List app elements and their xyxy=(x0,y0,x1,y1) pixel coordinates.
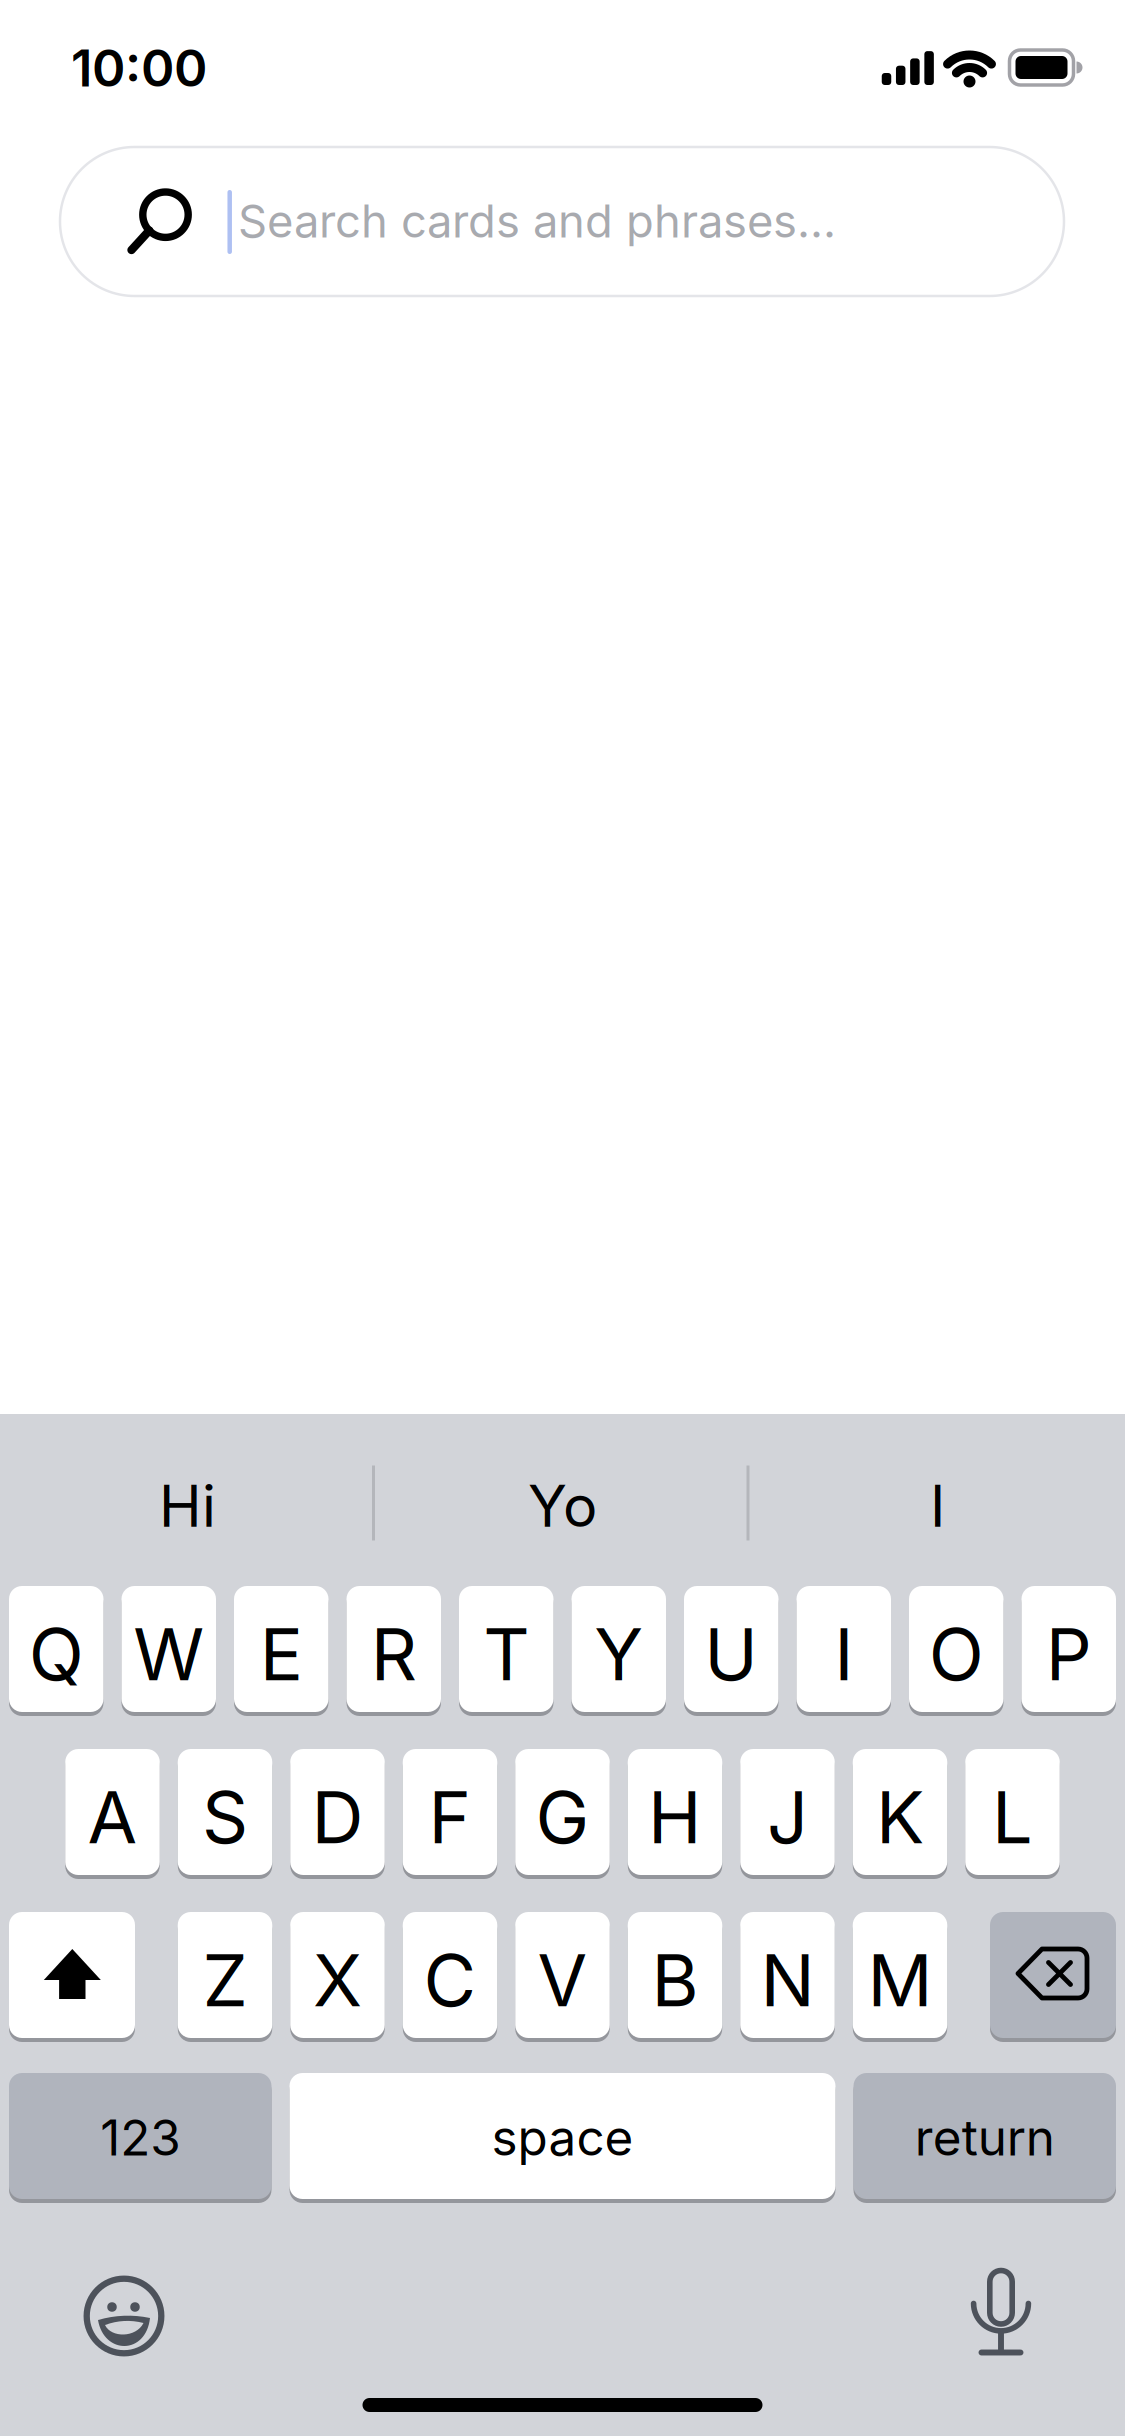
button[interactable]: K xyxy=(853,1749,947,1875)
staticText: E xyxy=(260,1611,303,1696)
button[interactable]: space xyxy=(289,2073,835,2199)
button[interactable]: Yo xyxy=(382,1436,742,1576)
staticText: M xyxy=(867,1937,932,2022)
button[interactable]: D xyxy=(290,1749,385,1875)
button[interactable]: Shift xyxy=(9,1912,135,2038)
staticText: return xyxy=(915,2108,1055,2167)
button[interactable]: O xyxy=(909,1586,1003,1712)
staticText: B xyxy=(651,1937,698,2022)
button[interactable]: L xyxy=(965,1749,1060,1875)
staticText: Y xyxy=(594,1611,643,1696)
staticText: U xyxy=(704,1611,758,1696)
button[interactable]: B xyxy=(628,1912,722,2038)
staticText: O xyxy=(929,1611,984,1696)
button[interactable]: T xyxy=(459,1586,553,1712)
button[interactable]: Dictate xyxy=(931,2235,1071,2375)
staticText: I xyxy=(834,1611,853,1696)
staticText: Q xyxy=(29,1611,84,1696)
button[interactable]: C xyxy=(403,1912,497,2038)
staticText: 10:00 xyxy=(71,38,207,98)
button[interactable]: S xyxy=(178,1749,272,1875)
button[interactable]: return xyxy=(853,2073,1116,2199)
button[interactable]: Q xyxy=(9,1586,103,1712)
button[interactable]: A xyxy=(65,1749,160,1875)
staticText: D xyxy=(311,1774,363,1859)
staticText: 123 xyxy=(100,2108,180,2167)
button[interactable]: N xyxy=(740,1912,835,2038)
button[interactable]: 123 xyxy=(9,2073,271,2199)
button[interactable]: R xyxy=(346,1586,441,1712)
staticText: T xyxy=(483,1611,529,1696)
button[interactable]: Emoji xyxy=(54,2246,194,2386)
button[interactable]: Hi xyxy=(7,1436,367,1576)
staticText: Hi xyxy=(159,1472,216,1540)
staticText: X xyxy=(313,1937,362,2022)
button[interactable]: Z xyxy=(178,1912,272,2038)
staticText: V xyxy=(537,1937,587,2022)
staticText: S xyxy=(202,1774,248,1859)
button[interactable]: E xyxy=(234,1586,328,1712)
staticText: C xyxy=(423,1937,476,2022)
staticText: K xyxy=(876,1774,924,1859)
staticText: W xyxy=(133,1611,204,1696)
button[interactable]: G xyxy=(515,1749,610,1875)
button[interactable]: V xyxy=(515,1912,610,2038)
staticText: F xyxy=(428,1774,471,1859)
button[interactable]: H xyxy=(628,1749,722,1875)
staticText: P xyxy=(1046,1611,1092,1696)
button[interactable]: U xyxy=(684,1586,778,1712)
staticText: R xyxy=(371,1611,417,1696)
button[interactable]: P xyxy=(1021,1586,1116,1712)
button[interactable]: F xyxy=(403,1749,497,1875)
staticText: A xyxy=(87,1774,137,1859)
button[interactable]: I xyxy=(757,1436,1117,1576)
button[interactable]: M xyxy=(853,1912,947,2038)
button[interactable]: X xyxy=(290,1912,385,2038)
staticText: N xyxy=(760,1937,814,2022)
staticText: G xyxy=(535,1774,589,1859)
button[interactable]: J xyxy=(740,1749,835,1875)
staticText: L xyxy=(992,1774,1033,1859)
button[interactable]: I xyxy=(796,1586,891,1712)
staticText: I xyxy=(930,1472,945,1540)
button[interactable]: Search cards and phrases xyxy=(60,147,1064,296)
staticText: H xyxy=(648,1774,702,1859)
staticText: Search cards and phrases... xyxy=(238,194,836,248)
button[interactable]: Delete xyxy=(990,1912,1116,2038)
staticText: Z xyxy=(202,1937,247,2022)
staticText: space xyxy=(491,2108,633,2167)
staticText: Yo xyxy=(528,1472,597,1540)
button[interactable]: Y xyxy=(571,1586,666,1712)
button[interactable]: W xyxy=(121,1586,216,1712)
staticText: J xyxy=(767,1774,808,1859)
